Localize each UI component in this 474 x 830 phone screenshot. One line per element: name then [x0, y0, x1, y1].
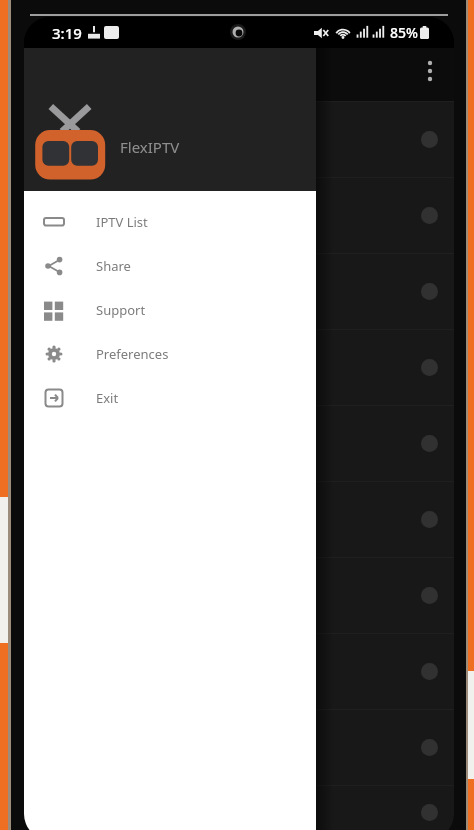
staticText: 3:19 — [52, 23, 82, 43]
staticText: Exit — [96, 389, 119, 407]
button[interactable] — [24, 101, 454, 177]
staticText: FlexIPTV — [120, 137, 180, 157]
button[interactable]: More options — [409, 49, 451, 93]
button[interactable] — [24, 481, 454, 557]
button[interactable]: Preferences — [24, 332, 316, 376]
staticText: Preferences — [96, 345, 169, 363]
button[interactable] — [24, 253, 454, 329]
button[interactable] — [24, 405, 454, 481]
button[interactable] — [24, 785, 454, 830]
button[interactable]: Support — [24, 288, 316, 332]
button[interactable] — [24, 709, 454, 785]
button[interactable] — [24, 329, 454, 405]
button[interactable] — [24, 557, 454, 633]
staticText: 85% — [390, 23, 418, 42]
button[interactable]: IPTV List — [24, 200, 316, 244]
button[interactable] — [24, 633, 454, 709]
button[interactable] — [24, 177, 454, 253]
button[interactable]: Exit — [24, 376, 316, 420]
staticText: Share — [96, 257, 131, 275]
button[interactable]: Share — [24, 244, 316, 288]
staticText: Support — [96, 301, 146, 319]
staticText: IPTV List — [96, 213, 148, 231]
